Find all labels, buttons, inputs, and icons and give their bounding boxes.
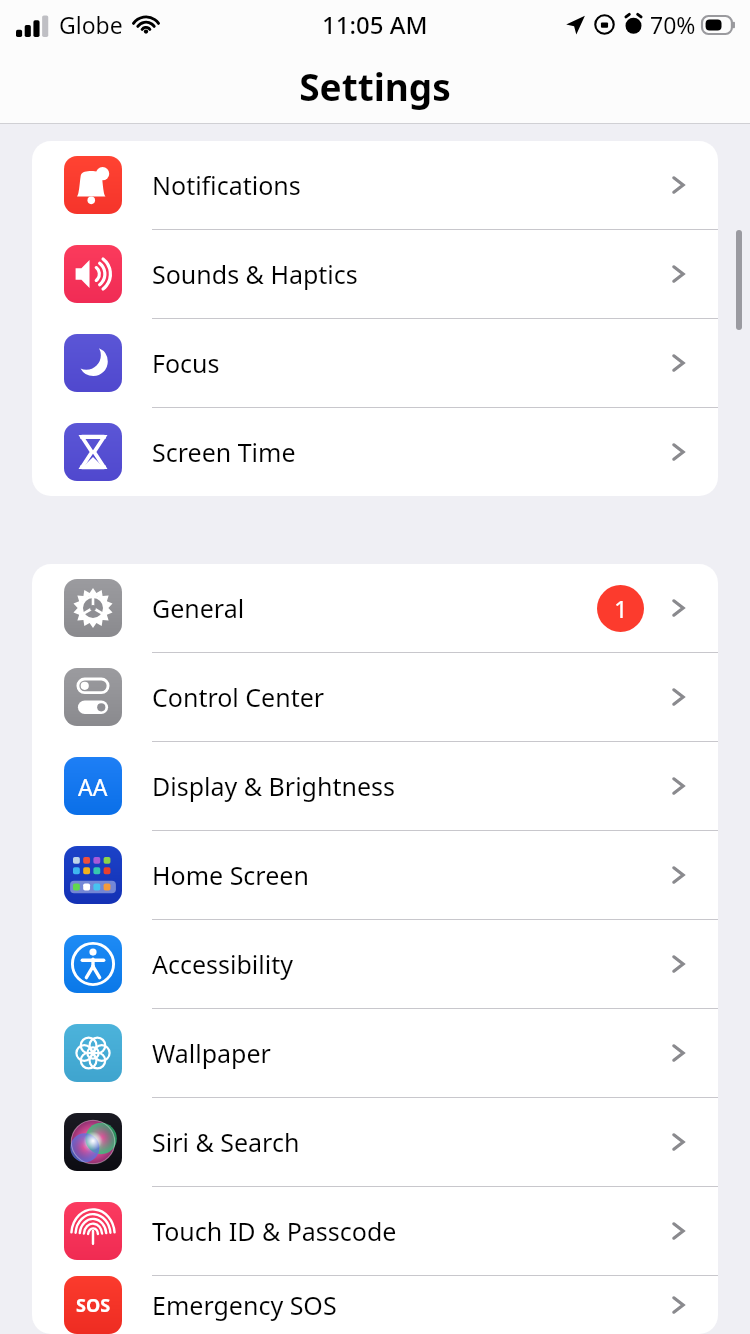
staticText: Wallpaper xyxy=(152,1036,666,1070)
staticText: 1 xyxy=(614,592,628,625)
button[interactable]: Siri & Search xyxy=(32,1098,718,1186)
button[interactable]: SOS xyxy=(32,1276,718,1334)
staticText: SOS xyxy=(76,1293,111,1318)
staticText: Control Center xyxy=(152,680,666,714)
button[interactable]: Focus xyxy=(32,319,718,407)
staticText: Siri & Search xyxy=(152,1125,666,1159)
staticText: Display & Brightness xyxy=(152,769,666,803)
staticText: Touch ID & Passcode xyxy=(152,1214,666,1248)
staticText: Emergency SOS xyxy=(152,1288,666,1322)
button[interactable]: General xyxy=(32,564,718,652)
button[interactable]: Wallpaper xyxy=(32,1009,718,1097)
button[interactable]: Notifications xyxy=(32,141,718,229)
staticText: Focus xyxy=(152,346,666,380)
button[interactable]: Screen Time xyxy=(32,408,718,496)
staticText: Notifications xyxy=(152,168,666,202)
button[interactable]: Home Screen xyxy=(32,831,718,919)
button[interactable]: Touch ID & Passcode xyxy=(32,1187,718,1275)
staticText: Settings xyxy=(299,61,451,111)
staticText: General xyxy=(152,591,597,625)
staticText: Globe xyxy=(59,9,123,40)
staticText: Sounds & Haptics xyxy=(152,257,666,291)
staticText: Screen Time xyxy=(152,435,666,469)
button[interactable]: Accessibility xyxy=(32,920,718,1008)
button[interactable]: Sounds & Haptics xyxy=(32,230,718,318)
staticText: Accessibility xyxy=(152,947,666,981)
button[interactable]: Control Center xyxy=(32,653,718,741)
staticText: Home Screen xyxy=(152,858,666,892)
staticText: AA xyxy=(78,771,108,802)
button[interactable]: AA xyxy=(32,742,718,830)
staticText: 11:05 AM xyxy=(322,8,428,41)
staticText: 70% xyxy=(650,9,696,40)
